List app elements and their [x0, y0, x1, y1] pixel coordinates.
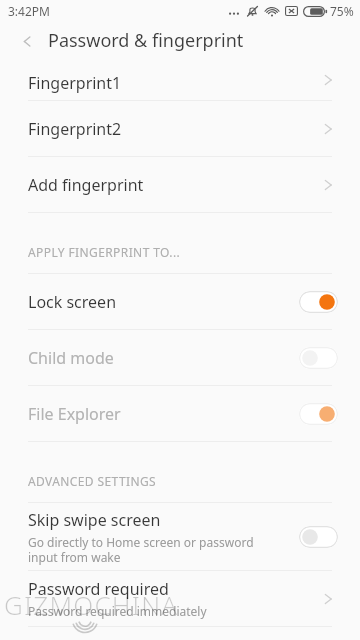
button[interactable]: Add fingerprint: [0, 157, 360, 212]
button[interactable]: File Explorer: [299, 403, 338, 425]
staticText: Lock screen: [28, 291, 117, 313]
staticText: 3:42PM: [8, 3, 50, 19]
button[interactable]: Child mode: [299, 347, 338, 369]
staticText: Password required immediately: [28, 603, 207, 619]
staticText: Skip swipe screen: [28, 509, 161, 531]
staticText: GIZMOCHINA: [4, 587, 179, 622]
staticText: Fingerprint2: [28, 118, 122, 140]
button[interactable]: Child mode: [0, 330, 360, 385]
button[interactable]: Password required: [0, 571, 360, 626]
staticText: Go directly to Home screen or password i…: [28, 534, 254, 565]
button[interactable]: Lock screen: [0, 274, 360, 329]
button[interactable]: Back: [14, 28, 40, 54]
staticText: Password required: [28, 578, 169, 600]
button[interactable]: Lock screen: [299, 291, 338, 313]
button[interactable]: File Explorer: [0, 386, 360, 441]
button[interactable]: Skip swipe screen: [299, 526, 338, 548]
staticText: 75%: [330, 3, 354, 19]
button[interactable]: Fingerprint1: [0, 59, 360, 100]
staticText: Child mode: [28, 347, 114, 369]
staticText: Password & fingerprint: [48, 28, 244, 53]
button[interactable]: Fingerprint2: [0, 101, 360, 156]
staticText: Add fingerprint: [28, 174, 144, 196]
staticText: ADVANCED SETTINGS: [28, 473, 157, 489]
staticText: File Explorer: [28, 403, 121, 425]
staticText: Fingerprint1: [28, 72, 122, 94]
button[interactable]: Skip swipe screen: [0, 503, 360, 570]
staticText: APPLY FINGERPRINT TO...: [28, 244, 181, 260]
